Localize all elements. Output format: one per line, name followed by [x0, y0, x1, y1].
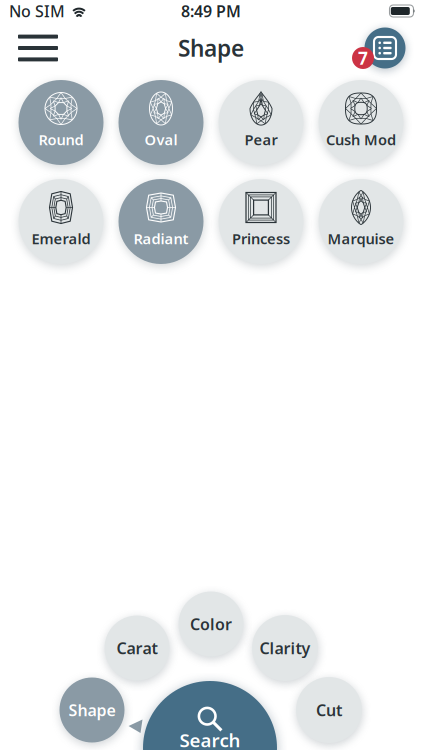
- staticText: Cush Mod: [326, 130, 396, 149]
- staticText: Emerald: [31, 229, 90, 248]
- staticText: Radiant: [133, 229, 188, 248]
- staticText: 8:49 PM: [181, 0, 241, 22]
- staticText: Shape: [68, 699, 115, 721]
- staticText: 7: [358, 46, 368, 69]
- staticText: Search: [179, 728, 240, 750]
- staticText: Princess: [232, 229, 290, 248]
- button[interactable]: Carat: [104, 615, 169, 680]
- staticText: Clarity: [259, 637, 310, 659]
- button[interactable]: Round: [18, 80, 103, 165]
- button[interactable]: Princess: [218, 179, 303, 264]
- button[interactable]: Clarity: [252, 615, 318, 681]
- staticText: No SIM: [9, 0, 65, 22]
- staticText: Color: [190, 613, 232, 635]
- staticText: Carat: [116, 637, 157, 659]
- staticText: Shape: [178, 33, 244, 63]
- button[interactable]: Marquise: [318, 179, 403, 264]
- button[interactable]: Search: [143, 681, 277, 750]
- staticText: Round: [38, 130, 83, 149]
- staticText: Cut: [316, 699, 342, 721]
- button[interactable]: Cush Mod: [318, 80, 403, 165]
- button[interactable]: Oval: [118, 80, 203, 165]
- button[interactable]: Shape: [59, 677, 124, 742]
- button[interactable]: Color: [178, 591, 243, 656]
- button[interactable]: Radiant: [118, 179, 203, 264]
- button[interactable]: Pear: [218, 80, 303, 165]
- button[interactable]: Menu: [10, 24, 66, 72]
- staticText: Oval: [144, 130, 177, 149]
- staticText: Marquise: [327, 229, 394, 248]
- button[interactable]: Cut: [296, 677, 362, 743]
- staticText: Pear: [244, 130, 277, 149]
- button[interactable]: Emerald: [18, 179, 103, 264]
- button[interactable]: Saved list, 7 items: [359, 22, 411, 74]
